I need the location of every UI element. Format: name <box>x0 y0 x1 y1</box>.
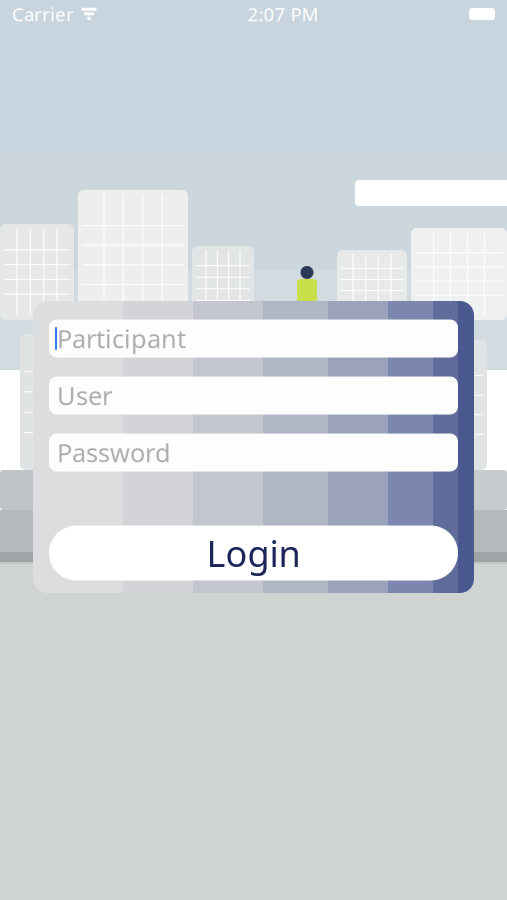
button[interactable]: Login <box>49 525 458 580</box>
staticText: Participant <box>57 322 186 355</box>
staticText: Password <box>57 436 171 469</box>
staticText: Login <box>206 529 300 577</box>
staticText: 2:07 PM <box>247 2 318 26</box>
button[interactable]: User <box>49 376 458 414</box>
staticText: User <box>57 379 112 412</box>
button[interactable]: Password <box>49 433 458 471</box>
staticText: Carrier <box>12 2 74 26</box>
button[interactable]: Participant <box>49 319 458 357</box>
